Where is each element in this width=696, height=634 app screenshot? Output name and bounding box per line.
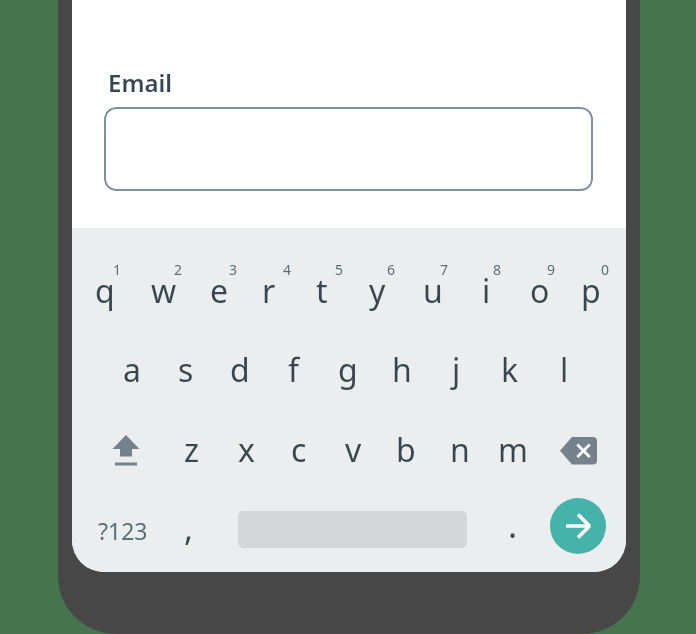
- button[interactable]: i: [459, 261, 513, 321]
- button[interactable]: 2: [151, 254, 205, 284]
- button[interactable]: r: [242, 261, 296, 321]
- button[interactable]: 0: [578, 254, 626, 284]
- staticText: d: [230, 348, 250, 392]
- button[interactable]: q: [78, 261, 132, 321]
- staticText: 5: [335, 260, 344, 279]
- staticText: i: [482, 269, 491, 313]
- staticText: ,: [184, 505, 194, 551]
- button[interactable]: s: [159, 340, 213, 400]
- staticText: j: [452, 348, 461, 392]
- staticText: x: [238, 428, 255, 472]
- button[interactable]: c: [272, 420, 326, 480]
- button[interactable]: ,: [162, 498, 216, 558]
- staticText: p: [581, 269, 601, 313]
- staticText: e: [210, 269, 229, 313]
- staticText: z: [184, 428, 200, 472]
- button[interactable]: w: [137, 261, 191, 321]
- staticText: a: [123, 348, 141, 392]
- staticText: Email: [108, 66, 173, 99]
- staticText: 2: [174, 260, 183, 279]
- button[interactable]: e: [192, 261, 246, 321]
- staticText: 3: [229, 260, 238, 279]
- button[interactable]: 9: [524, 254, 578, 284]
- staticText: 7: [440, 260, 449, 279]
- staticText: q: [95, 269, 115, 313]
- button[interactable]: [550, 498, 606, 554]
- staticText: h: [392, 348, 412, 392]
- button[interactable]: v: [326, 420, 380, 480]
- staticText: y: [369, 269, 386, 313]
- button[interactable]: u: [406, 261, 460, 321]
- button[interactable]: j: [429, 340, 483, 400]
- staticText: n: [450, 428, 470, 472]
- button[interactable]: g: [321, 340, 375, 400]
- button[interactable]: h: [375, 340, 429, 400]
- staticText: 0: [601, 260, 610, 279]
- button[interactable]: z: [165, 420, 219, 480]
- button[interactable]: a: [105, 340, 159, 400]
- staticText: m: [498, 428, 528, 472]
- button[interactable]: y: [350, 261, 404, 321]
- button[interactable]: 6: [364, 254, 418, 284]
- button[interactable]: 7: [417, 254, 471, 284]
- button[interactable]: m: [486, 420, 540, 480]
- staticText: t: [316, 269, 328, 313]
- staticText: s: [178, 348, 194, 392]
- button[interactable]: 8: [470, 254, 524, 284]
- button[interactable]: 5: [312, 254, 366, 284]
- staticText: u: [423, 269, 443, 313]
- staticText: 8: [493, 260, 502, 279]
- button[interactable]: d: [213, 340, 267, 400]
- staticText: 6: [387, 260, 396, 279]
- staticText: 1: [113, 260, 122, 279]
- button[interactable]: ?123: [83, 500, 163, 560]
- staticText: o: [530, 269, 550, 313]
- staticText: f: [288, 348, 300, 392]
- staticText: g: [338, 348, 358, 392]
- staticText: v: [345, 428, 362, 472]
- button[interactable]: n: [433, 420, 487, 480]
- button[interactable]: 4: [260, 254, 314, 284]
- staticText: 4: [283, 260, 292, 279]
- button[interactable]: [104, 430, 148, 474]
- button[interactable]: o: [513, 261, 567, 321]
- staticText: .: [508, 502, 518, 548]
- button[interactable]: x: [219, 420, 273, 480]
- button[interactable]: t: [295, 261, 349, 321]
- staticText: ?123: [98, 515, 148, 546]
- button[interactable]: b: [379, 420, 433, 480]
- staticText: b: [396, 428, 416, 472]
- button[interactable]: f: [267, 340, 321, 400]
- staticText: l: [560, 348, 569, 392]
- button[interactable]: [556, 433, 600, 469]
- staticText: k: [501, 348, 519, 392]
- staticText: c: [291, 428, 307, 472]
- button[interactable]: l: [537, 340, 591, 400]
- button[interactable]: [104, 107, 593, 191]
- button[interactable]: .: [486, 495, 540, 555]
- button[interactable]: 3: [206, 254, 260, 284]
- button[interactable]: 1: [90, 254, 144, 284]
- button[interactable]: k: [483, 340, 537, 400]
- staticText: w: [151, 269, 177, 313]
- staticText: r: [262, 269, 276, 313]
- staticText: 9: [547, 260, 556, 279]
- button[interactable]: p: [564, 261, 618, 321]
